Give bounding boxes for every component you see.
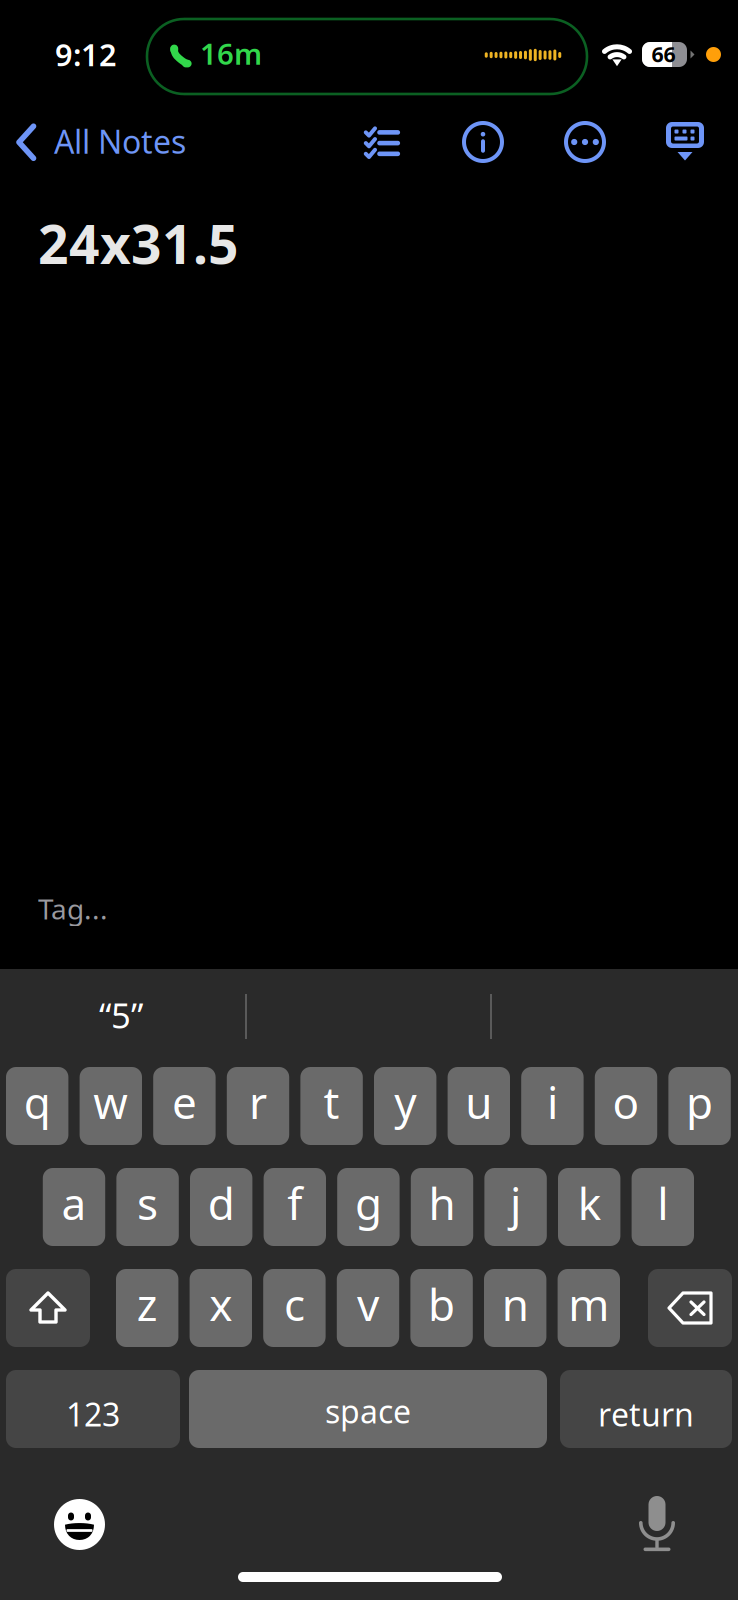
button[interactable]: Shift xyxy=(6,1269,90,1347)
button[interactable]: t xyxy=(300,1067,363,1145)
staticText: l xyxy=(657,1174,668,1232)
button[interactable]: space xyxy=(189,1370,547,1448)
staticText: x xyxy=(209,1275,232,1333)
button[interactable]: r xyxy=(227,1067,289,1145)
button[interactable]: l xyxy=(632,1168,694,1246)
button[interactable]: w xyxy=(80,1067,142,1145)
staticText: k xyxy=(578,1174,601,1232)
staticText: i xyxy=(547,1073,558,1131)
button[interactable]: c xyxy=(263,1269,326,1347)
staticText: return xyxy=(598,1393,694,1435)
staticText: m xyxy=(568,1275,609,1333)
button[interactable]: e xyxy=(153,1067,216,1145)
staticText: w xyxy=(93,1073,128,1131)
staticText: r xyxy=(249,1073,267,1131)
button[interactable]: n xyxy=(484,1269,546,1347)
button[interactable]: Dictation xyxy=(623,1480,691,1567)
staticText: z xyxy=(137,1275,158,1333)
button[interactable]: More xyxy=(552,109,618,175)
button[interactable]: Checklist xyxy=(350,113,413,172)
staticText: u xyxy=(465,1073,492,1131)
staticText: h xyxy=(428,1174,455,1232)
button[interactable]: return xyxy=(560,1370,732,1448)
staticText: v xyxy=(357,1275,379,1333)
staticText: c xyxy=(284,1275,305,1333)
button[interactable]: j xyxy=(484,1168,547,1246)
staticText: f xyxy=(287,1174,302,1232)
staticText: b xyxy=(428,1275,455,1333)
staticText: 16m xyxy=(200,34,262,73)
button[interactable]: q xyxy=(6,1067,68,1145)
button[interactable]: g xyxy=(337,1168,400,1246)
staticText: p xyxy=(686,1073,713,1131)
button[interactable]: k xyxy=(558,1168,620,1246)
staticText: “5” xyxy=(99,992,143,1038)
staticText: j xyxy=(510,1174,521,1232)
staticText: e xyxy=(172,1073,197,1131)
button[interactable]: x xyxy=(190,1269,252,1347)
button[interactable]: o xyxy=(595,1067,657,1145)
staticText: 24x31.5 xyxy=(38,208,239,279)
staticText: q xyxy=(24,1073,51,1131)
button[interactable]: u xyxy=(448,1067,510,1145)
button[interactable]: m xyxy=(558,1269,620,1347)
button[interactable]: Info xyxy=(450,109,516,175)
staticText: Tag... xyxy=(38,890,108,927)
button[interactable]: h xyxy=(411,1168,473,1246)
staticText: space xyxy=(325,1390,411,1432)
staticText: o xyxy=(612,1073,639,1131)
staticText: d xyxy=(208,1174,235,1232)
button[interactable]: y xyxy=(374,1067,436,1145)
button[interactable]: a xyxy=(43,1168,105,1246)
button[interactable]: Emoji xyxy=(38,1483,121,1566)
button[interactable]: f xyxy=(264,1168,326,1246)
button[interactable]: Delete xyxy=(648,1269,732,1347)
staticText: All Notes xyxy=(54,120,186,162)
button[interactable]: Hide Keyboard xyxy=(652,108,718,175)
button[interactable]: All Notes xyxy=(0,107,204,177)
button[interactable]: p xyxy=(668,1067,731,1145)
staticText: 66 xyxy=(651,40,675,68)
staticText: 9:12 xyxy=(55,34,117,75)
staticText: 123 xyxy=(66,1393,120,1435)
staticText: g xyxy=(355,1174,382,1232)
button[interactable]: d xyxy=(190,1168,252,1246)
staticText: a xyxy=(61,1174,86,1232)
staticText: n xyxy=(502,1275,529,1333)
staticText: y xyxy=(394,1073,416,1131)
button[interactable]: v xyxy=(337,1269,399,1347)
staticText: s xyxy=(137,1174,158,1232)
staticText: t xyxy=(324,1073,340,1131)
button[interactable]: i xyxy=(521,1067,584,1145)
button[interactable]: z xyxy=(116,1269,178,1347)
button[interactable]: s xyxy=(116,1168,179,1246)
button[interactable]: b xyxy=(410,1269,473,1347)
button[interactable]: 123 xyxy=(6,1370,180,1448)
